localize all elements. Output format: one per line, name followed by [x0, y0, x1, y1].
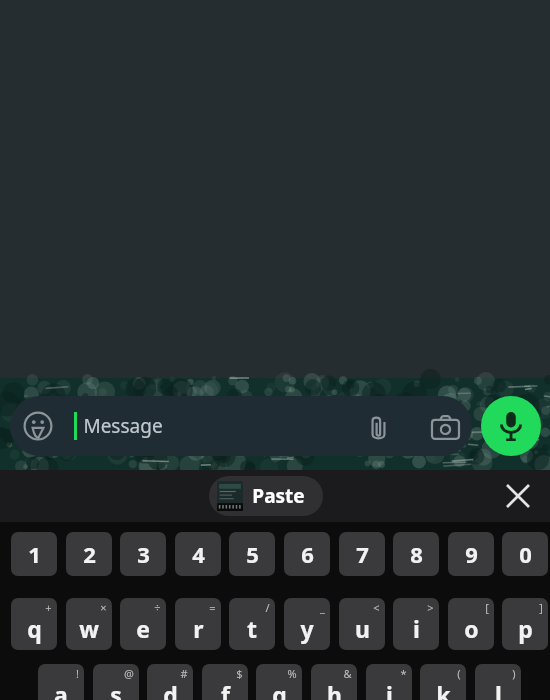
staticText: a: [54, 679, 68, 700]
button[interactable]: ): [475, 664, 521, 700]
button[interactable]: &: [311, 664, 357, 700]
staticText: s: [110, 679, 122, 700]
button[interactable]: Close: [500, 478, 536, 514]
staticText: !: [76, 666, 79, 681]
staticText: ÷: [154, 600, 161, 615]
staticText: ×: [100, 600, 107, 615]
staticText: 0: [519, 539, 532, 569]
button[interactable]: 6: [284, 532, 330, 576]
staticText: o: [464, 613, 479, 644]
button[interactable]: ]: [502, 598, 548, 650]
staticText: t: [247, 613, 257, 644]
button[interactable]: <: [339, 598, 385, 650]
button[interactable]: Attach: [362, 411, 394, 443]
button[interactable]: Emoji: [10, 396, 472, 456]
staticText: 8: [410, 539, 423, 569]
button[interactable]: #: [147, 664, 193, 700]
button[interactable]: *: [366, 664, 412, 700]
button[interactable]: 4: [175, 532, 221, 576]
staticText: 5: [246, 539, 259, 569]
button[interactable]: 0: [502, 532, 548, 576]
button[interactable]: 2: [66, 532, 112, 576]
staticText: 2: [83, 539, 96, 569]
staticText: l: [495, 679, 502, 700]
staticText: i: [413, 613, 420, 644]
button[interactable]: _: [284, 598, 330, 650]
staticText: /: [265, 600, 270, 615]
button[interactable]: (: [420, 664, 466, 700]
staticText: >: [427, 600, 434, 615]
button[interactable]: ÷: [120, 598, 166, 650]
button[interactable]: 3: [120, 532, 166, 576]
button[interactable]: @: [93, 664, 139, 700]
staticText: k: [436, 679, 451, 700]
staticText: 6: [301, 539, 314, 569]
staticText: <: [373, 600, 380, 615]
button[interactable]: =: [175, 598, 221, 650]
staticText: 7: [356, 539, 369, 569]
staticText: d: [163, 679, 178, 700]
button[interactable]: 9: [448, 532, 494, 576]
staticText: %: [287, 666, 297, 681]
staticText: *: [400, 666, 407, 681]
button[interactable]: +: [11, 598, 57, 650]
staticText: [: [485, 600, 489, 615]
button[interactable]: !: [38, 664, 84, 700]
staticText: @: [124, 666, 134, 681]
button[interactable]: 7: [339, 532, 385, 576]
staticText: 4: [192, 539, 205, 569]
staticText: _: [320, 600, 325, 615]
staticText: +: [45, 600, 52, 615]
button[interactable]: >: [393, 598, 439, 650]
staticText: j: [386, 679, 393, 700]
staticText: (: [457, 666, 461, 681]
staticText: y: [300, 613, 314, 644]
staticText: Paste: [252, 483, 305, 509]
button[interactable]: Camera: [429, 411, 461, 443]
button[interactable]: 8: [393, 532, 439, 576]
button[interactable]: 5: [229, 532, 275, 576]
button[interactable]: %: [256, 664, 302, 700]
staticText: w: [79, 613, 99, 644]
button[interactable]: [: [448, 598, 494, 650]
staticText: #: [180, 666, 188, 681]
staticText: &: [343, 666, 352, 681]
staticText: e: [136, 613, 150, 644]
staticText: p: [518, 613, 533, 644]
staticText: u: [355, 613, 370, 644]
staticText: h: [327, 679, 342, 700]
button[interactable]: /: [229, 598, 275, 650]
staticText: ]: [539, 600, 543, 615]
staticText: $: [236, 666, 243, 681]
staticText: ): [512, 666, 516, 681]
staticText: 9: [465, 539, 478, 569]
staticText: Message: [83, 413, 163, 439]
staticText: 1: [28, 539, 41, 569]
staticText: g: [272, 679, 287, 700]
button[interactable]: ×: [66, 598, 112, 650]
staticText: =: [209, 600, 216, 615]
button[interactable]: 1: [11, 532, 57, 576]
staticText: 3: [137, 539, 150, 569]
staticText: f: [221, 679, 230, 700]
button[interactable]: Emoji: [22, 410, 54, 442]
button[interactable]: Voice message: [481, 396, 541, 456]
staticText: q: [27, 613, 42, 644]
staticText: r: [193, 613, 204, 644]
button[interactable]: Paste: [209, 476, 323, 516]
button[interactable]: $: [202, 664, 248, 700]
